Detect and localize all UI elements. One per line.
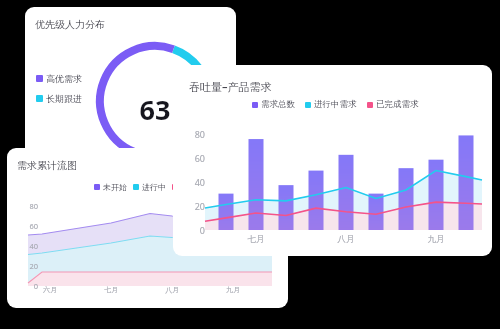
- staticText: 0: [185, 224, 205, 236]
- staticText: 八月: [332, 234, 360, 245]
- staticText: 20: [185, 200, 205, 212]
- staticText: 七月: [99, 285, 123, 294]
- staticText: 九月: [422, 234, 450, 245]
- button[interactable]: 吞吐量–产品需求: [173, 65, 492, 256]
- staticText: 需求总数: [261, 99, 295, 110]
- staticText: 优先级人力分布: [35, 18, 105, 31]
- staticText: 长期跟进: [46, 93, 82, 104]
- staticText: 已完成需求: [376, 99, 419, 110]
- staticText: 60: [185, 152, 205, 164]
- staticText: 进行中需求: [314, 99, 357, 110]
- button[interactable]: 优先级人力分布: [25, 7, 236, 165]
- staticText: 九月: [221, 285, 245, 294]
- staticText: 高优需求: [46, 73, 82, 84]
- staticText: 80: [16, 201, 38, 211]
- staticText: 未开始: [103, 182, 127, 192]
- button[interactable]: 需求累计流图: [7, 148, 288, 308]
- staticText: 60: [16, 221, 38, 231]
- staticText: 六月: [38, 285, 62, 294]
- staticText: 已完成: [181, 182, 205, 192]
- staticText: 八月: [160, 285, 184, 294]
- staticText: 40: [16, 241, 38, 251]
- staticText: 0: [16, 281, 38, 291]
- staticText: 吞吐量–产品需求: [189, 79, 272, 94]
- staticText: 需求累计流图: [17, 159, 77, 172]
- staticText: 七月: [242, 234, 270, 245]
- staticText: 进行中: [142, 182, 166, 192]
- staticText: 40: [185, 176, 205, 188]
- staticText: 80: [185, 128, 205, 140]
- staticText: 20: [16, 261, 38, 271]
- staticText: 63: [135, 91, 175, 128]
